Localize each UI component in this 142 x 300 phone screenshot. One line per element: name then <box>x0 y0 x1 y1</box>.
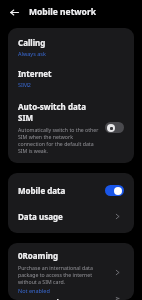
staticText: Data usage <box>18 211 110 222</box>
button[interactable]: Calling <box>18 37 124 57</box>
button[interactable]: More settings <box>18 297 124 300</box>
button[interactable]: Internet <box>18 68 124 88</box>
staticText: Mobile data <box>18 185 105 196</box>
button[interactable]: 0Roaming <box>18 250 124 294</box>
button[interactable]: Back <box>7 5 21 19</box>
staticText: Automatically switch to the other SIM wh… <box>18 126 99 154</box>
button[interactable]: Mobile data <box>18 177 124 203</box>
staticText: Calling <box>18 37 46 48</box>
staticText: Auto-switch data SIM <box>18 101 99 123</box>
staticText: Mobile network <box>29 6 97 18</box>
button[interactable]: On <box>105 185 124 196</box>
button[interactable]: Off <box>105 122 124 133</box>
staticText: Internet <box>18 68 52 79</box>
staticText: Always ask <box>18 50 46 57</box>
button[interactable]: Auto-switch data SIM <box>18 101 124 154</box>
staticText: 0Roaming <box>18 250 59 261</box>
staticText: Not enabled <box>18 287 50 294</box>
staticText: SIM2 <box>18 81 32 88</box>
button[interactable]: Data usage <box>18 203 124 229</box>
staticText: More settings <box>18 297 110 300</box>
staticText: Purchase an international data package t… <box>18 264 106 285</box>
